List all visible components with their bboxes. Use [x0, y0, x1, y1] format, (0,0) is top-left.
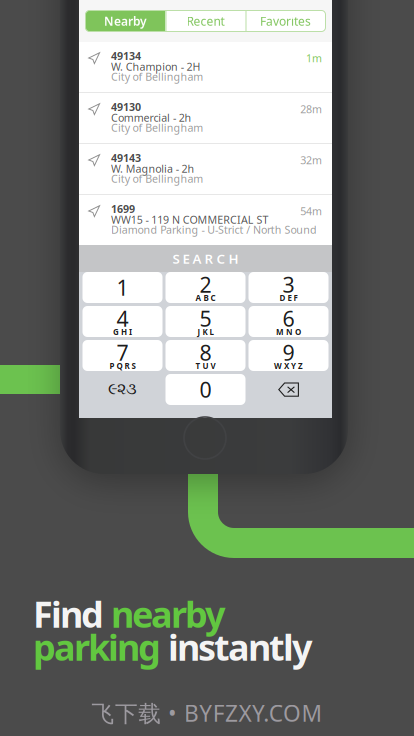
staticText: Commercial - 2h: [111, 110, 192, 125]
staticText: nearby: [111, 590, 226, 638]
staticText: 2: [199, 270, 211, 299]
staticText: 6: [282, 304, 294, 333]
staticText: A B C: [195, 293, 215, 303]
staticText: 54m: [300, 204, 322, 218]
staticText: City of Bellingham: [111, 69, 203, 84]
staticText: 3: [282, 270, 294, 299]
staticText: 8: [199, 338, 211, 367]
staticText: 7: [116, 338, 128, 367]
button[interactable]: 49130: [79, 93, 332, 143]
staticText: City of Bellingham: [111, 171, 203, 186]
staticText: J K L: [197, 327, 213, 337]
staticText: Recent: [186, 13, 224, 29]
staticText: 0: [199, 375, 211, 404]
button[interactable]: 7: [82, 340, 162, 371]
staticText: D E F: [279, 293, 297, 303]
button[interactable]: ૯૨૩: [82, 374, 162, 405]
staticText: Diamond Parking - U-Strict / North Sound: [111, 222, 317, 237]
button[interactable]: 0: [165, 374, 245, 405]
staticText: W. Champion - 2H: [111, 59, 200, 74]
button[interactable]: 1: [82, 272, 162, 303]
staticText: 5: [199, 304, 211, 333]
staticText: City of Bellingham: [111, 120, 203, 135]
staticText: WW15 - 119 N COMMERCIAL ST: [111, 212, 268, 227]
staticText: 1699: [111, 202, 135, 216]
staticText: T U V: [195, 361, 215, 371]
staticText: 4: [116, 304, 128, 333]
staticText: M N O: [276, 327, 301, 337]
staticText: S E A R C H: [172, 250, 238, 267]
staticText: 1m: [306, 51, 322, 65]
button[interactable]: Delete: [248, 374, 328, 405]
staticText: parking: [33, 623, 168, 671]
button[interactable]: 9: [248, 340, 328, 371]
button[interactable]: 4: [82, 306, 162, 337]
button[interactable]: 5: [165, 306, 245, 337]
button[interactable]: 2: [165, 272, 245, 303]
button[interactable]: Recent: [165, 10, 245, 31]
staticText: Nearby: [104, 13, 147, 29]
button[interactable]: 49143: [79, 144, 332, 194]
button[interactable]: 3: [248, 272, 328, 303]
button[interactable]: 49134: [79, 42, 332, 92]
staticText: 28m: [300, 102, 322, 116]
staticText: W. Magnolia - 2h: [111, 161, 194, 176]
staticText: 49134: [111, 49, 141, 63]
button[interactable]: 6: [248, 306, 328, 337]
staticText: ૯૨૩: [108, 382, 137, 397]
staticText: Find: [33, 590, 111, 638]
staticText: 飞下载 • BYFZXY.COM: [91, 698, 322, 728]
staticText: 32m: [300, 153, 322, 167]
staticText: 49143: [111, 151, 141, 165]
staticText: G H I: [113, 327, 132, 337]
staticText: 49130: [111, 100, 141, 114]
button[interactable]: 8: [165, 340, 245, 371]
staticText: Favorites: [260, 13, 311, 29]
staticText: P Q R S: [109, 361, 135, 371]
staticText: 9: [282, 338, 294, 367]
button[interactable]: Nearby: [85, 10, 165, 31]
staticText: instantly: [168, 623, 313, 671]
staticText: W X Y Z: [274, 361, 303, 371]
staticText: 1: [116, 273, 128, 302]
button[interactable]: 1699: [79, 195, 332, 245]
button[interactable]: Favorites: [245, 10, 325, 31]
